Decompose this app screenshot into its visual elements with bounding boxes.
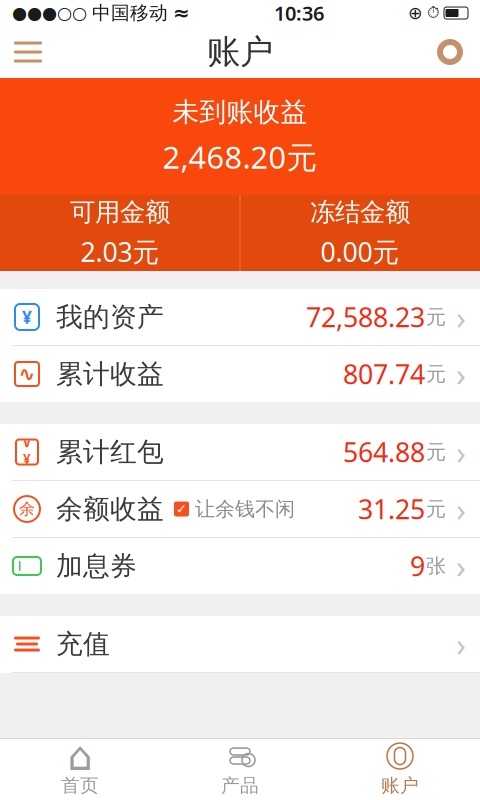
staticText: 充值 [56, 628, 110, 660]
staticText: › [456, 353, 466, 395]
staticText: 10:36 [274, 0, 324, 26]
staticText: 产品 [221, 774, 259, 797]
staticText: ✓ [176, 501, 187, 516]
button[interactable]: 可用金额 [0, 195, 240, 271]
staticText: 31.25 [358, 491, 425, 527]
staticText: 元 [426, 440, 446, 464]
staticText: ●●●○○ [12, 3, 87, 23]
staticText: ∨ [22, 436, 32, 450]
staticText: 元 [426, 497, 446, 521]
staticText: 累计红包 [56, 436, 164, 468]
button[interactable]: 充值 [0, 616, 480, 672]
button[interactable]: ¥ [0, 289, 480, 345]
staticText: 让余钱不闲 [195, 497, 295, 521]
staticText: 2,468.20元 [162, 136, 317, 177]
staticText: 元 [426, 305, 446, 329]
staticText: ≈ [173, 2, 190, 24]
staticText: › [456, 623, 466, 665]
button[interactable]: 产品 [160, 739, 320, 800]
button[interactable]: ∿ [0, 346, 480, 402]
staticText: › [456, 545, 466, 587]
button[interactable]: ∨ [0, 424, 480, 480]
staticText: ∿ [18, 363, 35, 385]
button[interactable]: 账户 [320, 739, 480, 800]
staticText: 未到账收益 [172, 96, 307, 129]
staticText: 张 [426, 554, 446, 578]
staticText: ¥ [23, 450, 31, 468]
staticText: 中国移动 [92, 1, 168, 24]
staticText: ¥ [22, 305, 32, 328]
staticText: ⊕ [408, 3, 423, 23]
staticText: 余 [19, 499, 35, 519]
button[interactable]: 加息券 [0, 538, 480, 594]
button[interactable]: Settings [424, 26, 476, 78]
staticText: 可用金额 [70, 197, 170, 228]
button[interactable]: 冻结金额 [240, 195, 480, 271]
staticText: 807.74 [343, 356, 425, 392]
button[interactable]: ⌂ [0, 739, 160, 800]
staticText: ⌂ [67, 733, 92, 779]
staticText: 0.00元 [320, 234, 399, 269]
staticText: 72,588.23 [306, 299, 425, 335]
staticText: › [456, 488, 466, 530]
staticText: 9 [410, 548, 425, 584]
staticText: 冻结金额 [310, 197, 410, 228]
staticText: 元 [426, 362, 446, 386]
staticText: 累计收益 [56, 358, 164, 390]
staticText: 加息券 [56, 550, 137, 582]
staticText: 2.03元 [80, 234, 159, 269]
staticText: 账户 [207, 31, 273, 72]
staticText: 余额收益 [56, 493, 164, 525]
staticText: › [456, 296, 466, 338]
staticText: ⏱ [427, 5, 439, 21]
staticText: 首页 [61, 774, 99, 797]
staticText: 我的资产 [56, 301, 164, 333]
staticText: 账户 [381, 774, 419, 797]
button[interactable]: 余 [0, 481, 480, 537]
button[interactable]: Menu [2, 26, 54, 78]
staticText: 564.88 [343, 434, 425, 470]
staticText: › [456, 431, 466, 473]
